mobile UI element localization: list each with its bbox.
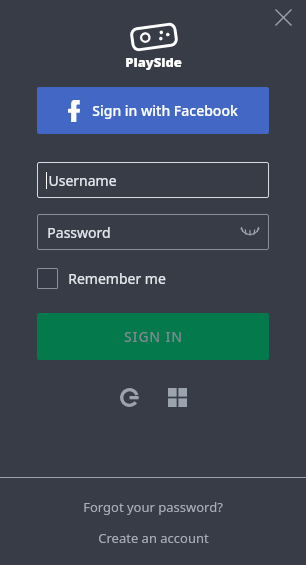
staticText: Username — [48, 171, 117, 190]
button[interactable]: Create an account — [0, 529, 306, 547]
button[interactable]: Close — [268, 2, 298, 32]
button[interactable]: Sign in with Facebook — [37, 87, 269, 134]
button[interactable]: Forgot your password? — [0, 498, 306, 516]
staticText: Create an account — [98, 529, 209, 547]
button[interactable]: Sign in with Google — [113, 381, 145, 413]
staticText: Forgot your password? — [83, 498, 223, 516]
staticText: Sign in with Facebook — [92, 101, 238, 120]
staticText: PlaySide — [125, 53, 182, 71]
button[interactable]: Sign in with Microsoft — [161, 381, 193, 413]
button[interactable]: SIGN IN — [37, 313, 269, 360]
staticText: Password — [47, 223, 111, 242]
button[interactable]: Username — [37, 162, 269, 198]
staticText: Remember me — [68, 269, 166, 288]
button[interactable]: Password — [37, 214, 269, 250]
button[interactable]: Remember me — [37, 268, 166, 289]
staticText: SIGN IN — [124, 327, 183, 346]
button[interactable]: Show password — [237, 219, 263, 245]
